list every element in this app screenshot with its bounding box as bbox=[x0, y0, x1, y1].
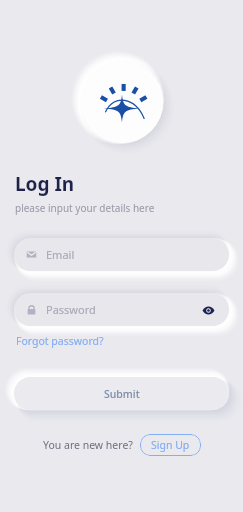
button[interactable]: Sign Up bbox=[140, 434, 201, 456]
button[interactable]: Forgot password? bbox=[14, 333, 106, 349]
staticText: Log In bbox=[15, 171, 75, 197]
button[interactable]: TYMIA logo bbox=[81, 61, 163, 143]
button[interactable]: Submit bbox=[14, 377, 229, 410]
button[interactable]: Show password bbox=[199, 301, 217, 319]
staticText: Sign Up bbox=[151, 438, 190, 452]
button[interactable]: Password bbox=[14, 293, 229, 326]
staticText: Submit bbox=[104, 387, 140, 401]
staticText: Forgot password? bbox=[16, 334, 104, 348]
staticText: Email bbox=[46, 247, 75, 262]
staticText: You are new here? bbox=[43, 438, 133, 452]
button[interactable]: Email bbox=[14, 238, 229, 271]
staticText: Password bbox=[46, 302, 96, 317]
staticText: please input your details here bbox=[15, 201, 155, 215]
